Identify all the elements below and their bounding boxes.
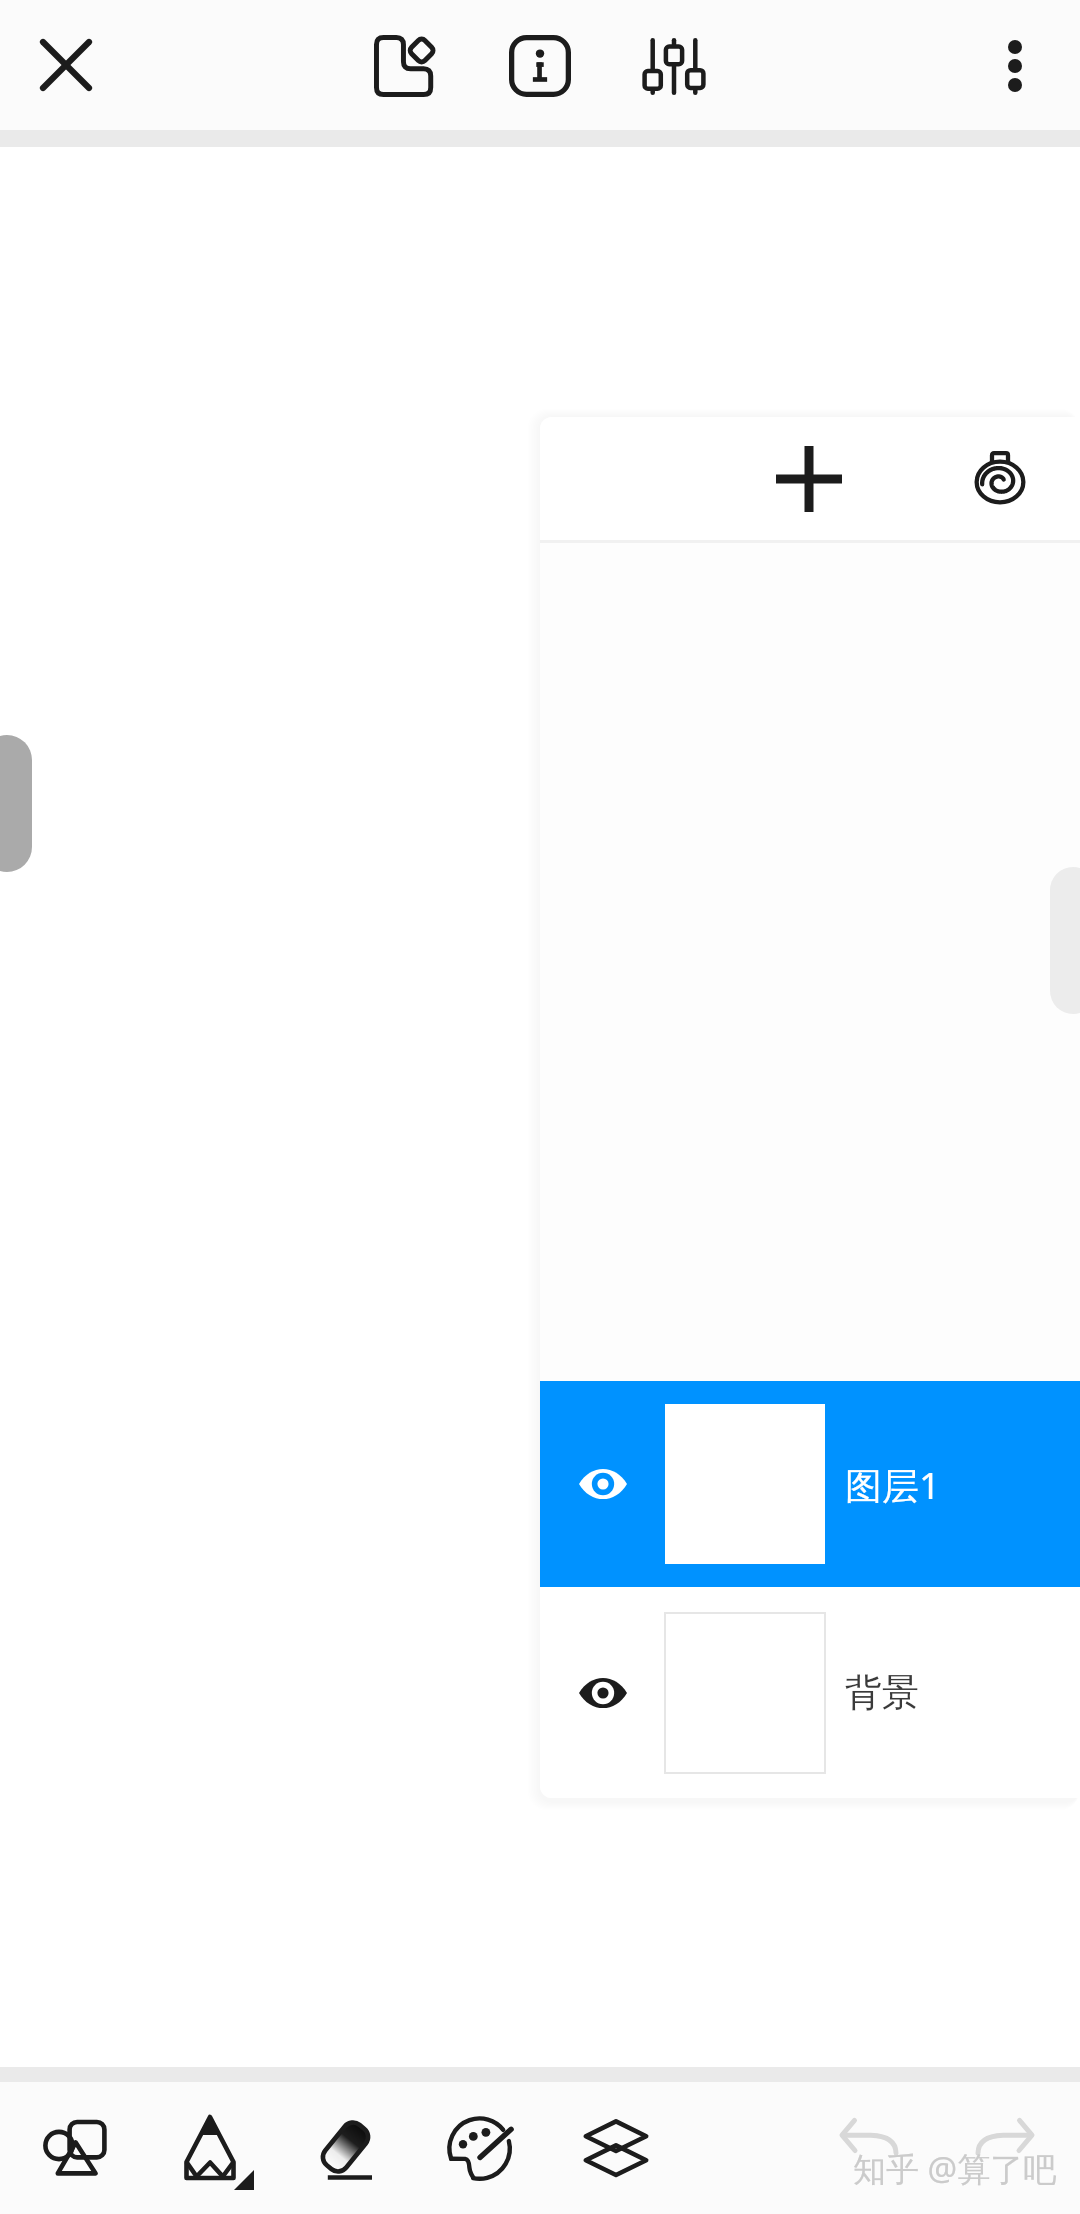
- button[interactable]: Layers: [560, 2092, 672, 2204]
- button[interactable]: Brush: [156, 2092, 268, 2204]
- button[interactable]: 背景: [540, 1587, 1080, 1798]
- button[interactable]: 图层1: [540, 1381, 1080, 1587]
- button[interactable]: Eraser: [289, 2092, 401, 2204]
- staticText: 知乎 @算了吧: [853, 2146, 1057, 2191]
- staticText: 图层1: [845, 1459, 941, 1510]
- staticText: 背景: [845, 1669, 919, 1716]
- button[interactable]: Undo: [813, 2092, 925, 2204]
- button[interactable]: Close: [16, 15, 116, 115]
- button[interactable]: More options: [965, 16, 1065, 116]
- button[interactable]: Layer settings: [950, 429, 1050, 529]
- button[interactable]: Adjust: [619, 11, 729, 121]
- button[interactable]: Info: [485, 11, 595, 121]
- button[interactable]: Palette: [424, 2092, 536, 2204]
- button[interactable]: Redo: [949, 2092, 1061, 2204]
- button[interactable]: Add layer: [759, 429, 859, 529]
- button[interactable]: Transform: [350, 11, 460, 121]
- button[interactable]: Shapes: [19, 2092, 131, 2204]
